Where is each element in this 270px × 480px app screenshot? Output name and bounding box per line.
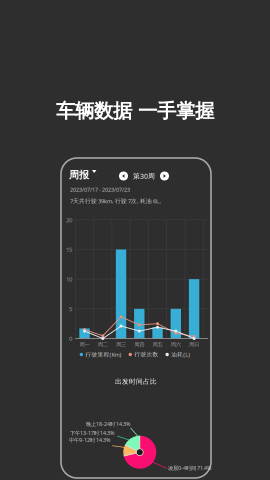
staticText: 凌晨0-4时间 71.4% <box>168 464 211 472</box>
staticText: 晚上18-24时 14.3% <box>86 420 130 428</box>
staticText: 行驶里程(Km) <box>86 351 122 358</box>
staticText: 车辆数据 一手掌握 <box>56 99 214 123</box>
button[interactable]: 行驶次数 <box>129 350 158 358</box>
staticText: 2023/07/17 - 2023/07/23 <box>70 186 130 193</box>
button[interactable]: 行驶里程(Km) <box>80 350 122 358</box>
staticText: 7天共行驶 39km, 行驶 7次, 耗油 6L。 <box>70 197 165 205</box>
button[interactable]: 油耗(L) <box>165 350 190 358</box>
button[interactable]: Next week <box>160 171 169 180</box>
button[interactable]: 周报 <box>69 168 99 182</box>
staticText: 周一 <box>79 341 89 348</box>
staticText: 中午9-12时 14.3% <box>69 436 110 444</box>
staticText: 15 <box>66 245 72 254</box>
staticText: 周日 <box>189 341 199 348</box>
staticText: 第30周 <box>133 171 155 181</box>
staticText: 下午13-17时 14.3% <box>70 429 114 437</box>
staticText: 20 <box>66 216 72 224</box>
staticText: 油耗(L) <box>171 351 190 358</box>
button[interactable]: Previous week <box>119 171 128 180</box>
staticText: 周五 <box>153 341 163 348</box>
staticText: 出发时间占比 <box>115 377 157 386</box>
staticText: 周三 <box>116 341 126 348</box>
staticText: 周六 <box>171 341 181 348</box>
staticText: 5 <box>69 305 72 313</box>
staticText: 周报 <box>69 169 89 181</box>
staticText: 周四 <box>134 341 144 348</box>
staticText: 0 <box>69 334 72 343</box>
staticText: 10 <box>66 275 72 283</box>
staticText: 行驶次数 <box>134 351 158 358</box>
staticText: 周二 <box>98 341 108 348</box>
